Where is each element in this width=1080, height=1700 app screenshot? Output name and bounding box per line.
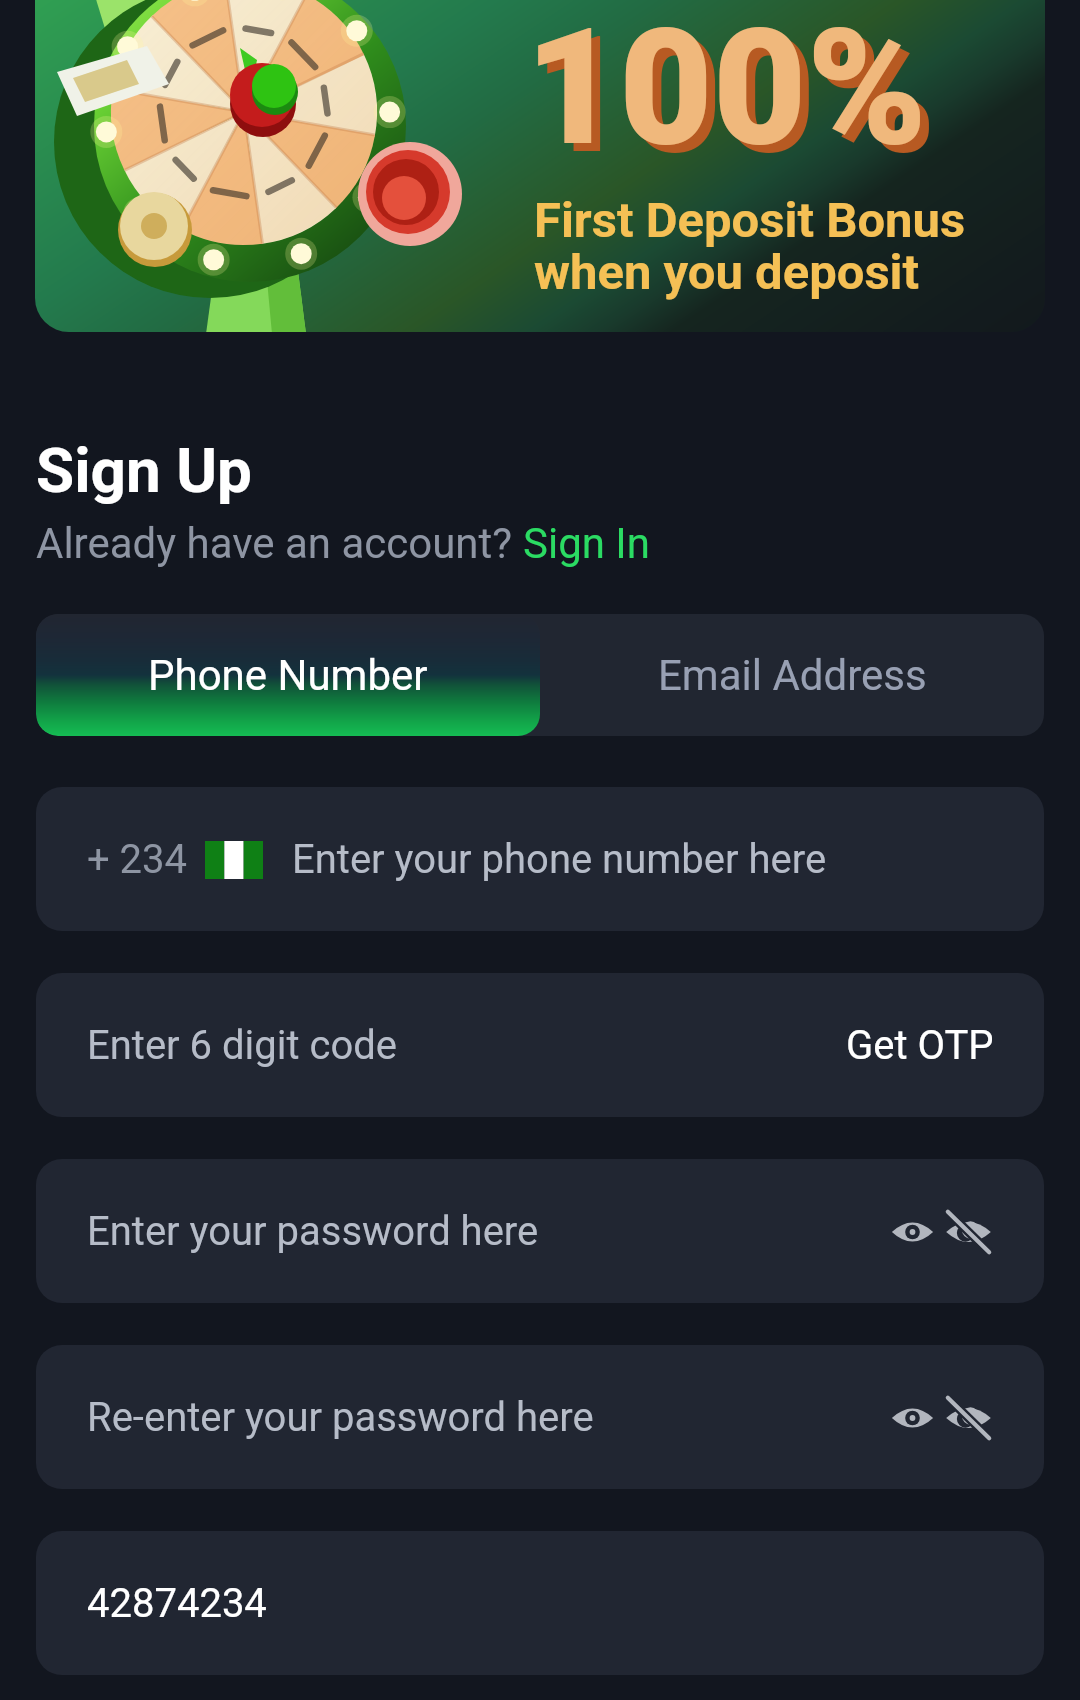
button[interactable]: Hide password — [943, 1212, 994, 1252]
staticText: Re-enter your password here — [87, 1394, 594, 1441]
button[interactable]: + 234 — [36, 787, 1044, 931]
staticText: 42874234 — [87, 1580, 267, 1627]
button[interactable]: Get OTP — [846, 1022, 994, 1069]
staticText: Sign Up — [36, 434, 252, 507]
staticText: + 234 — [87, 836, 188, 883]
staticText: First Deposit Bonus when you deposit — [534, 192, 966, 301]
staticText: Enter 6 digit code — [87, 1022, 397, 1069]
staticText: Phone Number — [148, 651, 428, 700]
staticText: Get OTP — [846, 1022, 994, 1069]
button[interactable]: Hide password — [943, 1398, 994, 1438]
button[interactable]: Show password — [889, 1212, 936, 1252]
button[interactable]: Sign In — [523, 519, 650, 568]
button[interactable]: Show password — [889, 1398, 936, 1438]
button[interactable]: 100% — [35, 0, 1045, 332]
button[interactable]: Enter 6 digit code — [36, 973, 1044, 1117]
staticText: 100% — [525, 0, 927, 183]
button[interactable]: Email Address — [540, 614, 1044, 736]
staticText: Already have an account? — [36, 519, 523, 568]
button[interactable]: Phone Number — [36, 614, 540, 736]
button[interactable]: 42874234 — [36, 1531, 1044, 1675]
staticText: Email Address — [658, 651, 927, 700]
staticText: 100% — [534, 1, 936, 191]
staticText: Enter your phone number here — [292, 836, 827, 883]
button[interactable]: Enter your password here — [36, 1159, 1044, 1303]
staticText: Enter your password here — [87, 1208, 539, 1255]
button[interactable]: Re-enter your password here — [36, 1345, 1044, 1489]
